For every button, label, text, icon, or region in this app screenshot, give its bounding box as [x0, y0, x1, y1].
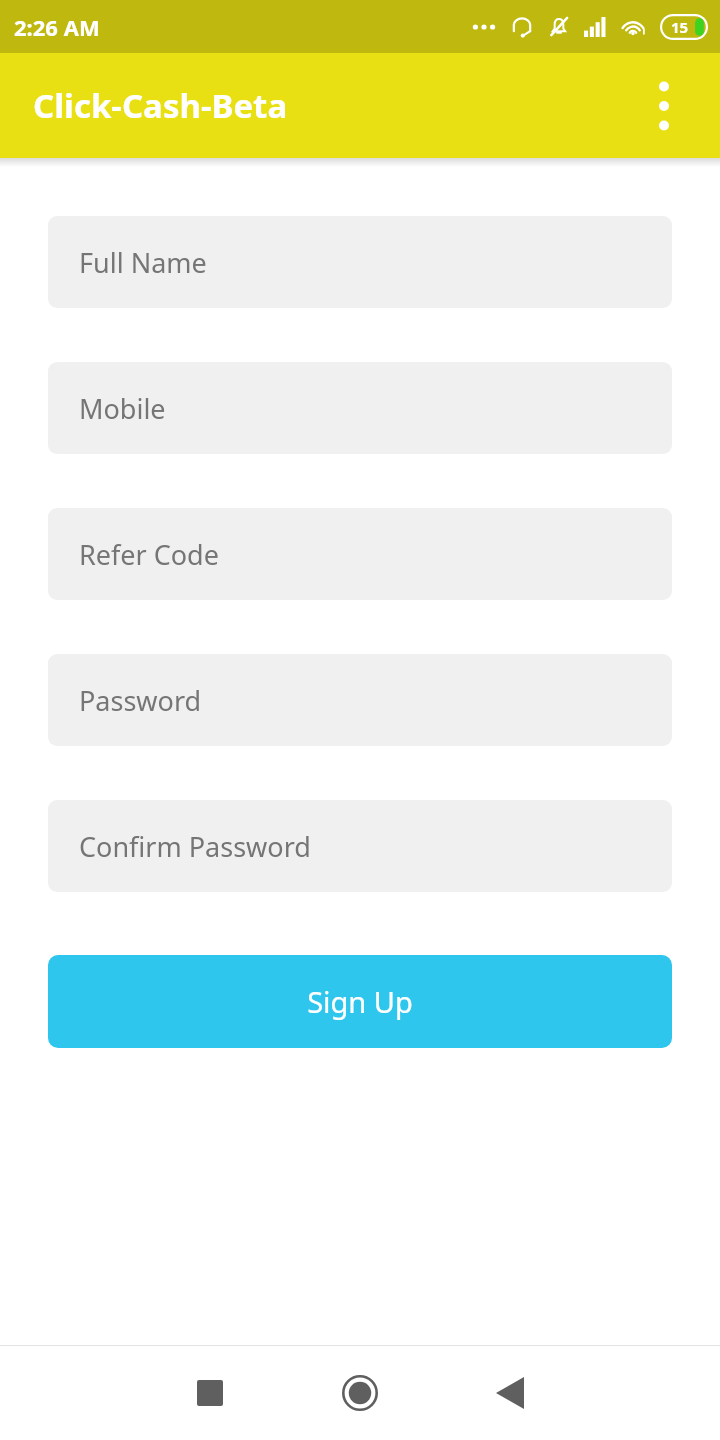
staticText: Sign Up	[307, 982, 413, 1021]
staticText: Confirm Password	[79, 828, 311, 865]
staticText: Password	[79, 682, 202, 719]
staticText: Refer Code	[79, 536, 219, 573]
button[interactable]: Refer Code	[48, 508, 672, 600]
button[interactable]: Confirm Password	[48, 800, 672, 892]
button[interactable]: Home	[324, 1357, 396, 1429]
button[interactable]: Sign Up	[48, 955, 672, 1048]
button[interactable]: Mobile	[48, 362, 672, 454]
staticText: 15	[671, 17, 689, 37]
button[interactable]: Back	[474, 1357, 546, 1429]
button[interactable]: Password	[48, 654, 672, 746]
button[interactable]: Recent apps	[174, 1357, 246, 1429]
staticText: Full Name	[79, 244, 207, 281]
button[interactable]: More options	[636, 78, 692, 134]
button[interactable]: Full Name	[48, 216, 672, 308]
staticText: Mobile	[79, 390, 166, 427]
staticText: Click-Cash-Beta	[33, 83, 288, 128]
staticText: 2:26 AM	[14, 12, 100, 42]
